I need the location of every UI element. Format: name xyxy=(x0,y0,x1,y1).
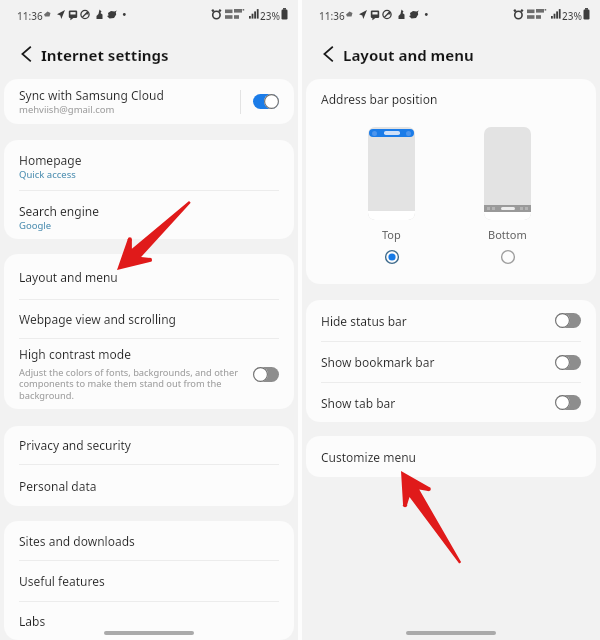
button[interactable]: Privacy and security xyxy=(4,426,294,464)
staticText: Labs xyxy=(19,613,46,629)
button[interactable]: Homepage xyxy=(4,140,294,190)
button[interactable]: Bottom xyxy=(499,248,517,266)
staticText: 11:36 xyxy=(319,9,345,23)
button[interactable]: Search engine xyxy=(4,191,294,239)
button[interactable]: Navigate up xyxy=(315,41,341,67)
staticText: Search engine xyxy=(19,203,99,219)
staticText: Homepage xyxy=(19,152,82,168)
staticText: High contrast mode xyxy=(19,346,131,362)
staticText: Show tab bar xyxy=(321,395,555,411)
staticText: Bottom xyxy=(488,227,527,242)
staticText: 11:36 xyxy=(17,9,43,23)
staticText: Sync with Samsung Cloud xyxy=(19,87,164,103)
button[interactable]: Sites and downloads xyxy=(4,521,294,560)
staticText: Privacy and security xyxy=(19,437,131,453)
button[interactable]: Sync with Samsung Cloud xyxy=(253,94,279,109)
staticText: Sites and downloads xyxy=(19,533,135,549)
staticText: Webpage view and scrolling xyxy=(19,311,176,327)
button[interactable]: Layout and menu xyxy=(4,254,294,299)
staticText: mehviish@gmail.com xyxy=(19,103,115,116)
button[interactable]: Hide status bar xyxy=(306,300,596,341)
staticText: Internet settings xyxy=(41,45,169,65)
button[interactable]: Show tab bar xyxy=(306,383,596,422)
staticText: Google xyxy=(19,219,52,232)
button[interactable]: Labs xyxy=(4,602,294,640)
staticText: Show bookmark bar xyxy=(321,354,555,370)
staticText: Address bar position xyxy=(321,91,438,107)
button[interactable]: Hide status bar xyxy=(555,313,581,328)
staticText: Layout and menu xyxy=(19,269,118,285)
button[interactable]: High contrast mode xyxy=(253,367,279,382)
staticText: Adjust the colors of fonts, backgrounds,… xyxy=(19,366,238,402)
button[interactable]: Customize menu xyxy=(306,436,596,477)
staticText: Customize menu xyxy=(321,449,417,465)
button[interactable]: Sync with Samsung Cloud xyxy=(4,79,294,124)
button[interactable]: Useful features xyxy=(4,561,294,601)
staticText: Quick access xyxy=(19,168,76,181)
button[interactable]: Navigate up xyxy=(13,41,39,67)
staticText: 23% xyxy=(562,9,582,23)
button[interactable]: Top xyxy=(368,123,415,266)
staticText: Personal data xyxy=(19,478,97,494)
staticText: Hide status bar xyxy=(321,313,555,329)
button[interactable]: Bottom xyxy=(484,123,531,266)
staticText: Top xyxy=(382,227,401,242)
staticText: Useful features xyxy=(19,573,105,589)
staticText: Layout and menu xyxy=(343,45,474,65)
button[interactable]: Show bookmark bar xyxy=(555,355,581,370)
button[interactable]: Webpage view and scrolling xyxy=(4,300,294,338)
staticText: 23% xyxy=(260,9,280,23)
button[interactable]: Personal data xyxy=(4,465,294,506)
button[interactable]: Show bookmark bar xyxy=(306,342,596,382)
button[interactable]: Show tab bar xyxy=(555,395,581,410)
button[interactable]: Top xyxy=(383,248,401,266)
